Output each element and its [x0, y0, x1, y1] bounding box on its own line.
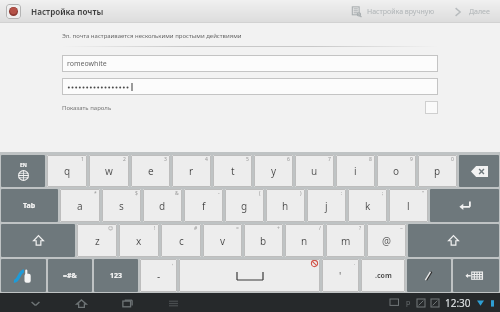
button[interactable]: Настройка вручную: [347, 0, 438, 23]
staticText: +: [277, 225, 280, 232]
button[interactable]: 3: [131, 155, 170, 187]
staticText: =: [236, 225, 239, 232]
staticText: ": [422, 190, 425, 197]
staticText: u: [311, 164, 318, 178]
button[interactable]: App icon: [6, 4, 21, 19]
staticText: w: [105, 164, 113, 178]
staticText: -: [218, 190, 220, 197]
button[interactable]: ☺: [77, 224, 117, 257]
staticText: 1: [81, 156, 84, 163]
button[interactable]: =#&: [48, 259, 92, 292]
staticText: d: [159, 199, 166, 213]
button[interactable]: ,: [140, 259, 177, 292]
button[interactable]: #: [161, 224, 201, 257]
staticText: р: [406, 298, 411, 308]
staticText: 8: [369, 156, 372, 163]
button[interactable]: Recent apps: [118, 294, 136, 312]
staticText: 9: [410, 156, 413, 163]
button[interactable]: -: [184, 189, 223, 222]
staticText: Далее: [469, 7, 490, 17]
staticText: /: [319, 225, 321, 232]
staticText: ): [300, 190, 302, 197]
button[interactable]: Menu: [164, 294, 182, 312]
staticText: !: [154, 225, 156, 232]
button[interactable]: /: [285, 224, 324, 257]
button[interactable]: 9: [377, 155, 416, 187]
button[interactable]: 123: [94, 259, 138, 292]
staticText: &: [175, 190, 179, 197]
button[interactable]: 8: [336, 155, 375, 187]
button[interactable]: +: [244, 224, 283, 257]
button[interactable]: Показать пароль: [62, 101, 438, 114]
staticText: c: [179, 234, 184, 248]
button[interactable]: Home: [72, 294, 90, 312]
button[interactable]: =: [203, 224, 242, 257]
button[interactable]: 4: [172, 155, 211, 187]
staticText: 123: [110, 271, 123, 281]
staticText: z: [95, 234, 100, 248]
button[interactable]: 2: [89, 155, 129, 187]
staticText: *: [94, 190, 97, 197]
button[interactable]: ;: [348, 189, 387, 222]
staticText: Настройка почты: [31, 6, 104, 17]
button[interactable]: Shift: [1, 224, 75, 257]
staticText: p: [434, 164, 441, 178]
button[interactable]: Tab: [1, 189, 58, 222]
button[interactable]: Gesture typing: [1, 259, 46, 292]
button[interactable]: &: [143, 189, 182, 222]
staticText: 3: [164, 156, 167, 163]
staticText: @: [382, 234, 391, 248]
button[interactable]: Back: [26, 294, 44, 312]
button[interactable]: :: [307, 189, 346, 222]
button[interactable]: Handwriting: [407, 259, 451, 292]
button[interactable]: ": [389, 189, 428, 222]
staticText: Настройка вручную: [367, 7, 434, 17]
staticText: #: [194, 225, 198, 232]
button[interactable]: ~: [367, 224, 406, 257]
staticText: h: [282, 199, 289, 213]
button[interactable]: .com: [361, 259, 405, 292]
staticText: i: [354, 164, 357, 178]
staticText: n: [301, 234, 308, 248]
button[interactable]: 6: [254, 155, 293, 187]
button[interactable]: $: [102, 189, 141, 222]
staticText: EN: [20, 162, 27, 169]
staticText: .com: [375, 271, 392, 281]
button[interactable]: Shift: [408, 224, 499, 257]
button[interactable]: 5: [213, 155, 252, 187]
button[interactable]: (: [225, 189, 264, 222]
button[interactable]: .: [322, 259, 359, 292]
staticText: ,: [172, 260, 174, 267]
staticText: r: [189, 164, 194, 178]
button[interactable]: 7: [295, 155, 334, 187]
staticText: Эл. почта настраивается несколькими прос…: [62, 32, 242, 40]
staticText: ☺: [108, 225, 114, 231]
staticText: 0: [451, 156, 454, 163]
staticText: $: [135, 190, 138, 197]
button[interactable]: ): [266, 189, 305, 222]
button[interactable]: Hide keyboard: [453, 259, 499, 292]
staticText: ?: [359, 225, 362, 232]
button[interactable]: 0: [418, 155, 457, 187]
staticText: 7: [328, 156, 331, 163]
button[interactable]: Backspace: [459, 155, 499, 187]
staticText: f: [202, 199, 206, 213]
button[interactable]: !: [119, 224, 159, 257]
staticText: 12:30: [445, 296, 471, 310]
button[interactable]: *: [60, 189, 100, 222]
button[interactable]: ?: [326, 224, 365, 257]
button[interactable]: Change language: [1, 155, 45, 187]
staticText: 5: [246, 156, 249, 163]
staticText: l: [407, 199, 410, 213]
staticText: k: [365, 199, 371, 213]
staticText: 6: [287, 156, 290, 163]
button[interactable]: Enter: [430, 189, 499, 222]
staticText: 4: [205, 156, 208, 163]
button[interactable]: Space: [179, 259, 320, 292]
staticText: b: [260, 234, 267, 248]
button[interactable]: 1: [47, 155, 87, 187]
button[interactable]: Далее: [448, 0, 494, 23]
staticText: v: [220, 234, 226, 248]
staticText: -: [157, 269, 161, 283]
staticText: y: [271, 164, 277, 178]
